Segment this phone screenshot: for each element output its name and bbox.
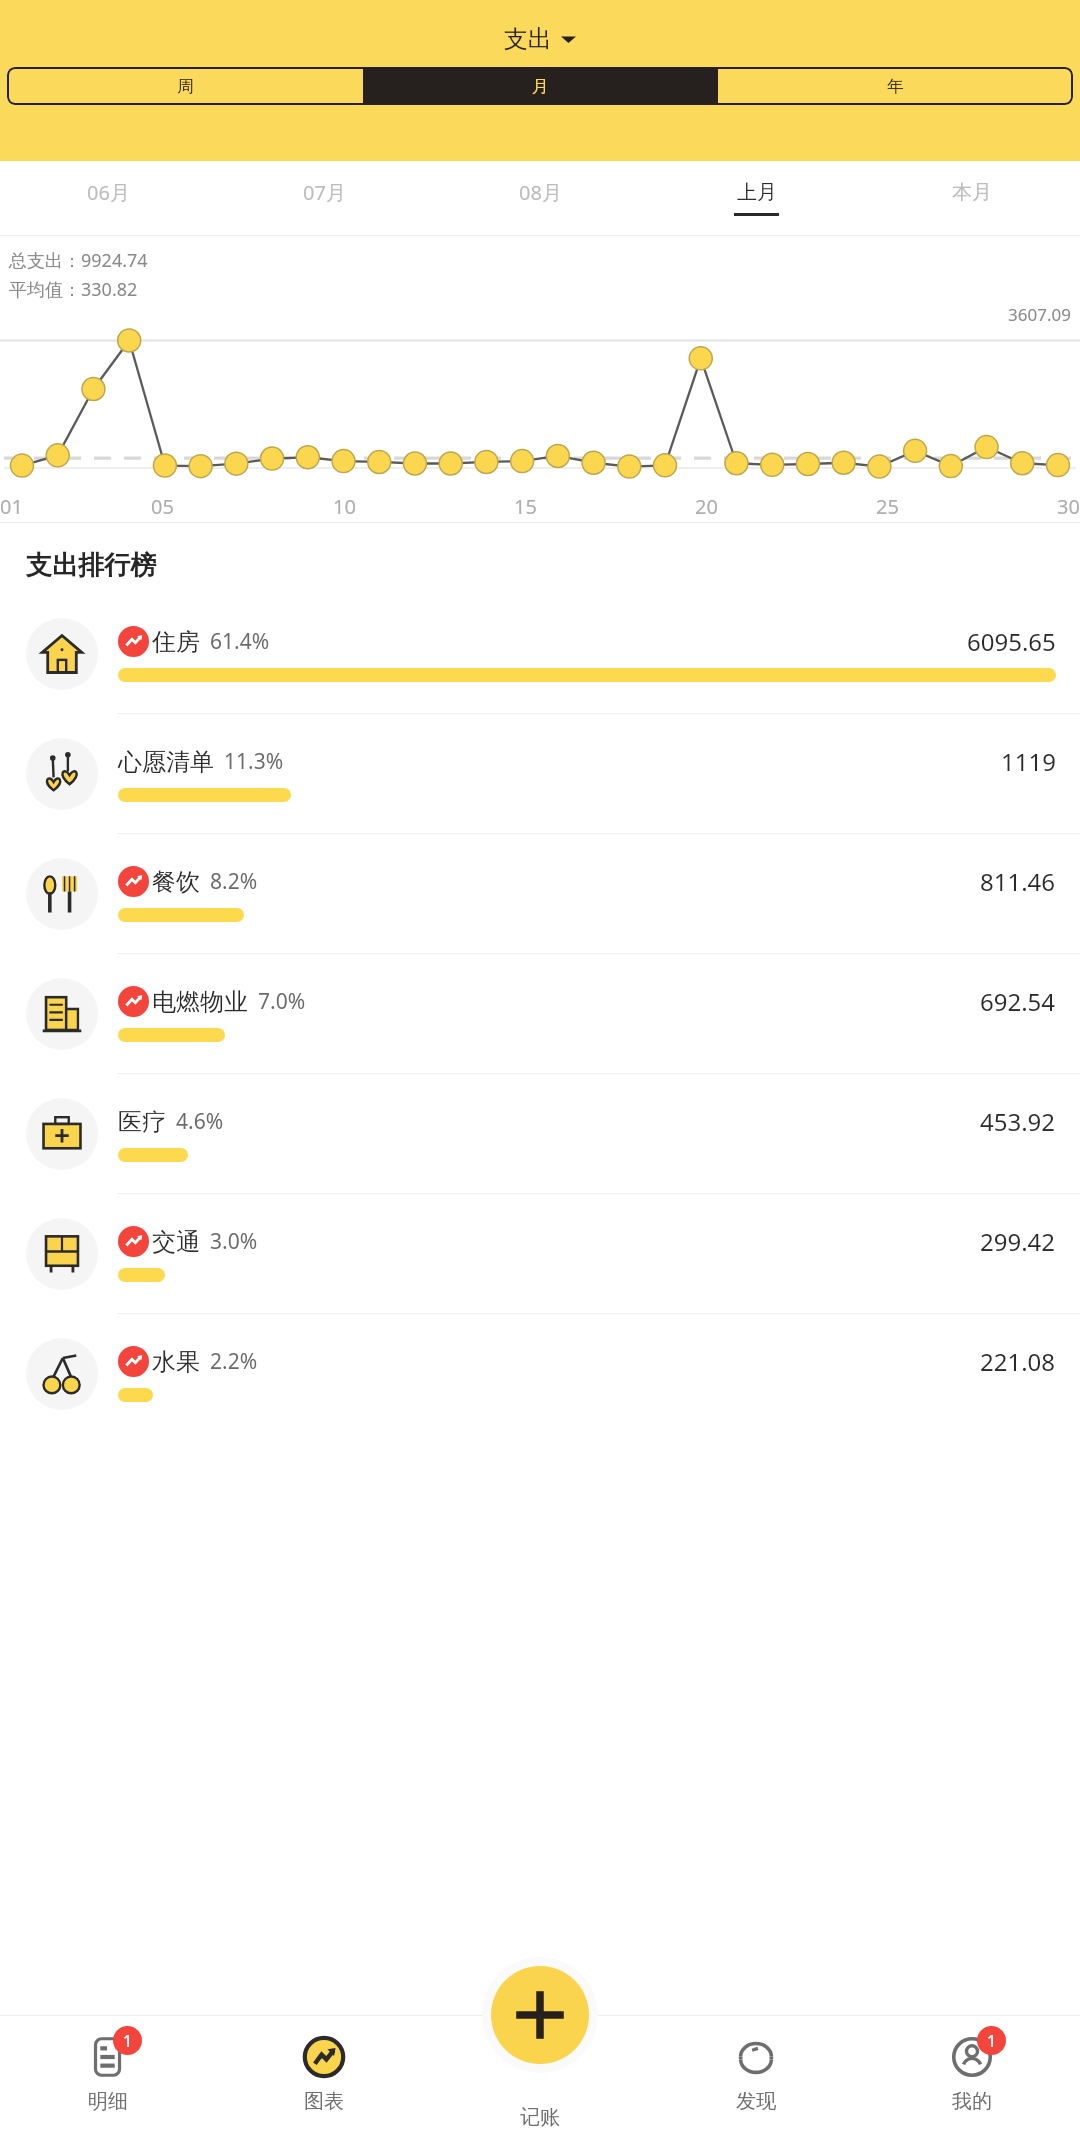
button[interactable]: 医疗 (0, 1074, 1080, 1193)
staticText: 上月 (737, 180, 777, 205)
button[interactable]: 08月 (432, 161, 648, 235)
staticText: 15 (514, 493, 537, 520)
staticText: 01 (0, 493, 23, 520)
staticText: 住房 (152, 627, 200, 657)
staticText: 本月 (952, 180, 992, 205)
button[interactable]: 年 (718, 67, 1073, 105)
staticText: 1 (987, 2030, 997, 2052)
staticText: 记账 (520, 2105, 560, 2130)
staticText: 电燃物业 (152, 987, 248, 1017)
staticText: 2.2% (210, 1347, 258, 1376)
staticText: 8.2% (210, 867, 258, 896)
staticText: 221.08 (980, 1345, 1056, 1378)
staticText: 发现 (736, 2089, 776, 2114)
staticText: 年 (887, 76, 904, 97)
staticText: 总支出：9924.74 (9, 248, 148, 273)
button[interactable]: 记账 (482, 1957, 598, 2073)
staticText: 交通 (152, 1227, 200, 1257)
staticText: 1119 (1001, 745, 1056, 778)
staticText: 07月 (303, 179, 346, 206)
staticText: 3607.09 (1008, 303, 1071, 326)
button[interactable]: 图表 (216, 2015, 432, 2149)
button[interactable]: 1 (864, 2015, 1080, 2149)
staticText: 11.3% (224, 747, 284, 776)
button[interactable]: 心愿清单 (0, 714, 1080, 833)
staticText: 周 (177, 76, 194, 97)
staticText: 明细 (88, 2089, 128, 2114)
staticText: 支出排行榜 (26, 549, 156, 582)
staticText: 心愿清单 (118, 747, 214, 777)
staticText: 20 (695, 493, 718, 520)
staticText: 图表 (304, 2089, 344, 2114)
staticText: 25 (876, 493, 899, 520)
staticText: 我的 (952, 2089, 992, 2114)
staticText: 692.54 (980, 985, 1056, 1018)
staticText: 月 (532, 76, 549, 97)
staticText: 3.0% (210, 1227, 258, 1256)
staticText: 61.4% (210, 627, 270, 656)
button[interactable]: 餐饮 (0, 834, 1080, 953)
button[interactable]: 电燃物业 (0, 954, 1080, 1073)
staticText: 医疗 (118, 1107, 166, 1137)
staticText: 支出 (504, 24, 552, 54)
button[interactable]: 本月 (864, 161, 1080, 235)
staticText: 08月 (519, 179, 562, 206)
button[interactable]: 住房 (0, 594, 1080, 713)
staticText: 299.42 (980, 1225, 1056, 1258)
staticText: 6095.65 (967, 625, 1056, 658)
staticText: 30 (1057, 493, 1080, 520)
staticText: 4.6% (176, 1107, 224, 1136)
button[interactable]: 发现 (648, 2015, 864, 2149)
staticText: 05 (151, 493, 174, 520)
staticText: 10 (333, 493, 356, 520)
staticText: 平均值：330.82 (9, 277, 138, 302)
button[interactable]: 支出 (504, 24, 576, 54)
staticText: 水果 (152, 1347, 200, 1377)
button[interactable]: 水果 (0, 1314, 1080, 1433)
staticText: 餐饮 (152, 867, 200, 897)
button[interactable]: 06月 (0, 161, 216, 235)
staticText: 06月 (87, 179, 130, 206)
button[interactable]: 周 (7, 67, 363, 105)
staticText: 811.46 (980, 865, 1056, 898)
button[interactable]: 月 (363, 67, 718, 105)
button[interactable]: 07月 (216, 161, 432, 235)
staticText: 7.0% (258, 987, 306, 1016)
button[interactable]: 交通 (0, 1194, 1080, 1313)
button[interactable]: 1 (0, 2015, 216, 2149)
staticText: 453.92 (980, 1105, 1056, 1138)
staticText: 1 (123, 2030, 133, 2052)
button[interactable]: 上月 (648, 161, 864, 235)
